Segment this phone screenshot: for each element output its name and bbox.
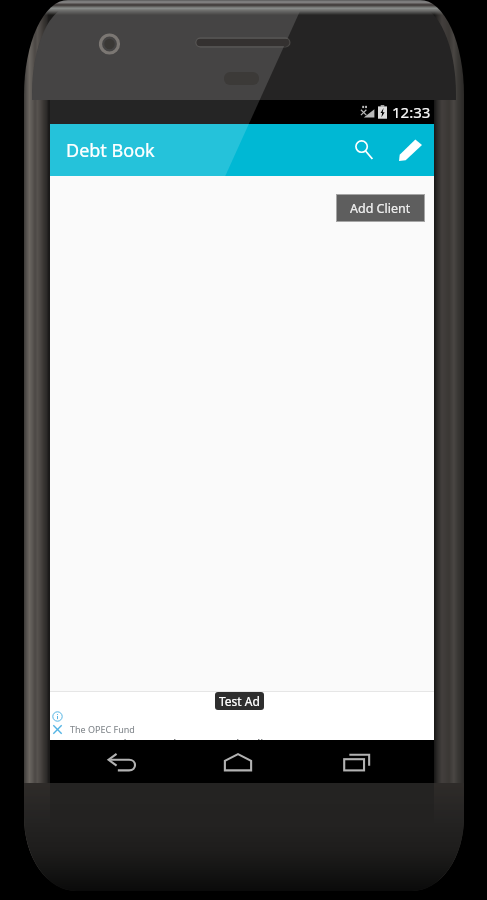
- staticText: 12:33: [392, 102, 431, 122]
- button[interactable]: Recent apps: [327, 740, 387, 783]
- staticText: Test Ad: [219, 693, 260, 709]
- button[interactable]: Close ad: [51, 723, 64, 736]
- button[interactable]: Search: [341, 124, 387, 176]
- staticText: The OPEC Fund: [70, 723, 135, 735]
- button[interactable]: Edit: [387, 124, 433, 176]
- button[interactable]: Home: [208, 740, 268, 783]
- staticText: Debt Book: [66, 138, 155, 163]
- button[interactable]: Test Ad: [219, 693, 260, 709]
- staticText: Add Client: [350, 200, 411, 217]
- button[interactable]: Ad info: [52, 711, 63, 722]
- button[interactable]: Back: [92, 740, 152, 783]
- staticText: Empowering people. Improving lives.: [70, 736, 286, 752]
- button[interactable]: Add Client: [337, 195, 424, 221]
